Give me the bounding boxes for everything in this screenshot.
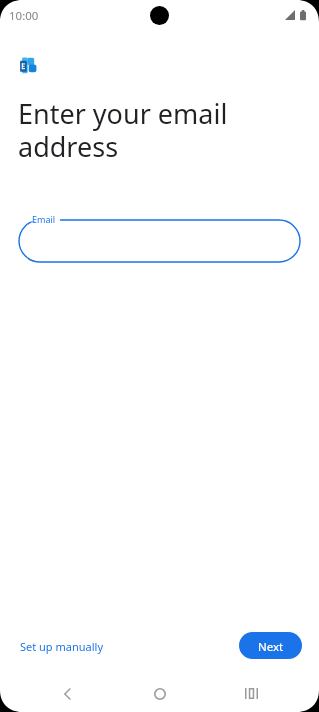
button[interactable]: Next	[239, 632, 302, 659]
staticText: Next	[258, 639, 284, 655]
button[interactable]: Home	[137, 671, 182, 712]
staticText: Enter your email address	[18, 95, 228, 165]
staticText: 10:00	[9, 8, 39, 24]
staticText: Set up manually	[20, 639, 104, 654]
button[interactable]: Email	[18, 212, 301, 269]
staticText: Email	[32, 213, 56, 225]
button[interactable]: Recent apps	[229, 671, 274, 712]
button[interactable]: Back	[45, 671, 90, 712]
button[interactable]: Set up manually	[14, 633, 110, 660]
